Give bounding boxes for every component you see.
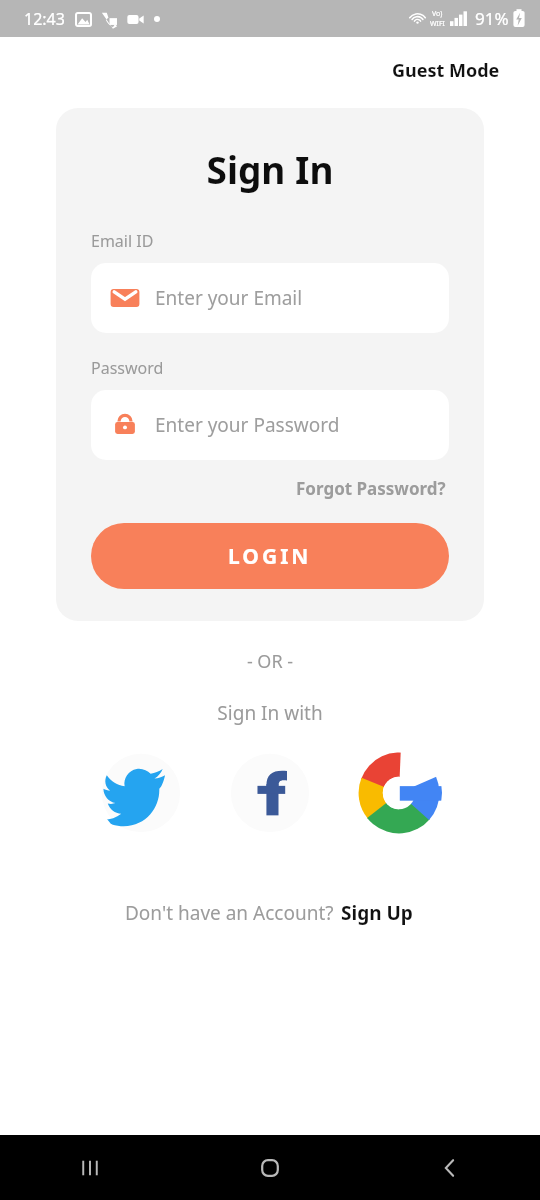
staticText: Enter your Email	[155, 285, 303, 311]
staticText: WIFI	[430, 19, 445, 29]
staticText: Enter your Password	[155, 412, 340, 438]
staticText: Sign In with	[0, 700, 540, 726]
button[interactable]: Sign in with Facebook	[227, 750, 313, 836]
staticText: Sign Up	[341, 900, 413, 926]
staticText: Forgot Password?	[296, 477, 446, 500]
button[interactable]: Recent apps	[0, 1135, 180, 1200]
button[interactable]: Guest Mode	[388, 55, 504, 86]
button[interactable]: Home	[180, 1135, 360, 1200]
button[interactable]: Sign in with Twitter	[98, 750, 184, 836]
staticText: Password	[91, 357, 164, 379]
button[interactable]: Back	[360, 1135, 540, 1200]
button[interactable]: LOGIN	[91, 523, 449, 589]
button[interactable]: Forgot Password?	[293, 474, 449, 503]
staticText: Don't have an Account?	[125, 900, 339, 926]
staticText: - OR -	[0, 649, 540, 674]
button[interactable]: Sign in with Google	[356, 750, 442, 836]
staticText: LOGIN	[228, 542, 312, 571]
button[interactable]: Sign Up	[339, 898, 415, 928]
staticText: Guest Mode	[392, 58, 500, 83]
staticText: 12:43	[24, 8, 65, 30]
staticText: Sign In	[91, 144, 449, 194]
staticText: 91%	[475, 7, 509, 30]
button[interactable]: Enter your Password	[91, 390, 449, 460]
staticText: Vo)	[432, 9, 443, 19]
button[interactable]: Enter your Email	[91, 263, 449, 333]
staticText: Email ID	[91, 230, 154, 252]
